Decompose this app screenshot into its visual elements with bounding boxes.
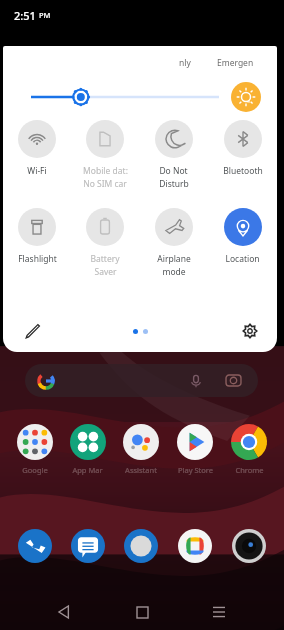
button[interactable]: Wi-Fi <box>3 120 71 177</box>
staticText: 2:51 <box>14 8 36 23</box>
staticText: mode <box>162 266 186 278</box>
button[interactable]: Search <box>25 364 258 397</box>
button[interactable]: Brightness <box>27 80 223 114</box>
staticText: Wi-Fi <box>27 165 47 177</box>
staticText: No SIM car <box>83 178 127 190</box>
staticText: Battery <box>90 253 120 265</box>
button[interactable]: Bluetooth <box>208 120 277 177</box>
staticText: Emergen <box>217 57 254 69</box>
button[interactable]: Recent apps <box>206 599 232 625</box>
staticText: Bluetooth <box>223 165 263 177</box>
button[interactable]: Flashlight <box>3 208 71 265</box>
button[interactable]: Mobile dat: <box>71 120 139 190</box>
staticText: Disturb <box>159 178 189 190</box>
button[interactable]: Messages <box>61 529 114 563</box>
staticText: PM <box>39 10 51 20</box>
button[interactable]: Settings <box>237 318 263 344</box>
button[interactable]: Battery <box>71 208 139 278</box>
button[interactable]: Back <box>52 599 78 625</box>
button[interactable]: App Mar <box>61 424 114 475</box>
staticText: App Mar <box>72 465 103 475</box>
button[interactable]: Chrome <box>222 424 276 475</box>
button[interactable]: Camera <box>222 529 276 563</box>
button[interactable]: Airplane <box>139 208 208 278</box>
staticText: Assistant <box>125 465 157 475</box>
staticText: Flashlight <box>18 253 57 265</box>
staticText: Airplane <box>157 253 191 265</box>
button[interactable]: Auto brightness <box>231 82 261 112</box>
staticText: nly <box>179 57 191 69</box>
button[interactable]: Home <box>129 599 155 625</box>
staticText: Mobile dat: <box>83 165 128 177</box>
staticText: Saver <box>94 266 117 278</box>
staticText: Play Store <box>178 465 213 475</box>
button[interactable]: Edit tiles <box>19 318 45 344</box>
button[interactable]: Contacts <box>114 529 168 563</box>
button[interactable]: Play Store <box>168 424 222 475</box>
button[interactable]: Assistant <box>114 424 168 475</box>
button[interactable]: Phone <box>8 529 61 563</box>
staticText: Do Not <box>159 165 188 177</box>
button[interactable]: Photos <box>168 529 222 563</box>
button[interactable]: Do Not <box>139 120 208 190</box>
staticText: Chrome <box>235 465 264 475</box>
button[interactable]: Google <box>8 424 61 475</box>
staticText: Google <box>22 465 48 475</box>
button[interactable]: Location <box>208 208 277 265</box>
staticText: Location <box>225 253 260 265</box>
